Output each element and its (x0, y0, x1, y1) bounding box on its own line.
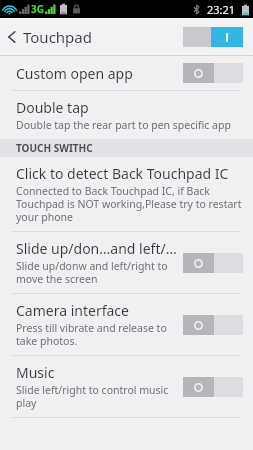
button[interactable]: Slide up/don…and left/right (0, 232, 253, 293)
button[interactable]: Custom open app (0, 56, 253, 90)
staticText: Press till vibrate and release to take p… (16, 321, 177, 348)
staticText: 23:21 (207, 2, 236, 17)
staticText: Music (16, 363, 55, 382)
staticText: Double tap (16, 98, 89, 117)
button[interactable]: Toggle (183, 315, 243, 335)
staticText: Slide up/donw and left/right to move the… (16, 259, 177, 286)
button[interactable]: Toggle (183, 377, 243, 397)
staticText: Connected to Back Touchpad IC, if Back T… (16, 184, 243, 224)
staticText: Touchpad (23, 27, 92, 47)
button[interactable]: Camera interface (0, 294, 253, 355)
staticText: 3G (31, 2, 44, 16)
button[interactable]: Double tap (0, 91, 253, 139)
staticText: TOUCH SWITHC (16, 141, 93, 155)
staticText: Custom open app (16, 64, 133, 83)
staticText: Click to detect Back Touchpad IC (16, 164, 229, 183)
other: Back (8, 30, 16, 44)
staticText: Double tap the rear part to pen specific… (16, 118, 231, 132)
button[interactable]: Toggle (183, 63, 243, 83)
button[interactable]: Music (0, 356, 253, 417)
button[interactable]: Toggle (183, 253, 243, 273)
button[interactable]: Click to detect Back Touchpad IC (0, 157, 253, 231)
button[interactable]: Touchpad on (183, 27, 243, 47)
staticText: Slide up/don…and left/right (16, 239, 177, 258)
staticText: Slide left/right to control music play (16, 383, 177, 410)
button[interactable]: Back (0, 27, 100, 47)
staticText: Camera interface (16, 301, 129, 320)
